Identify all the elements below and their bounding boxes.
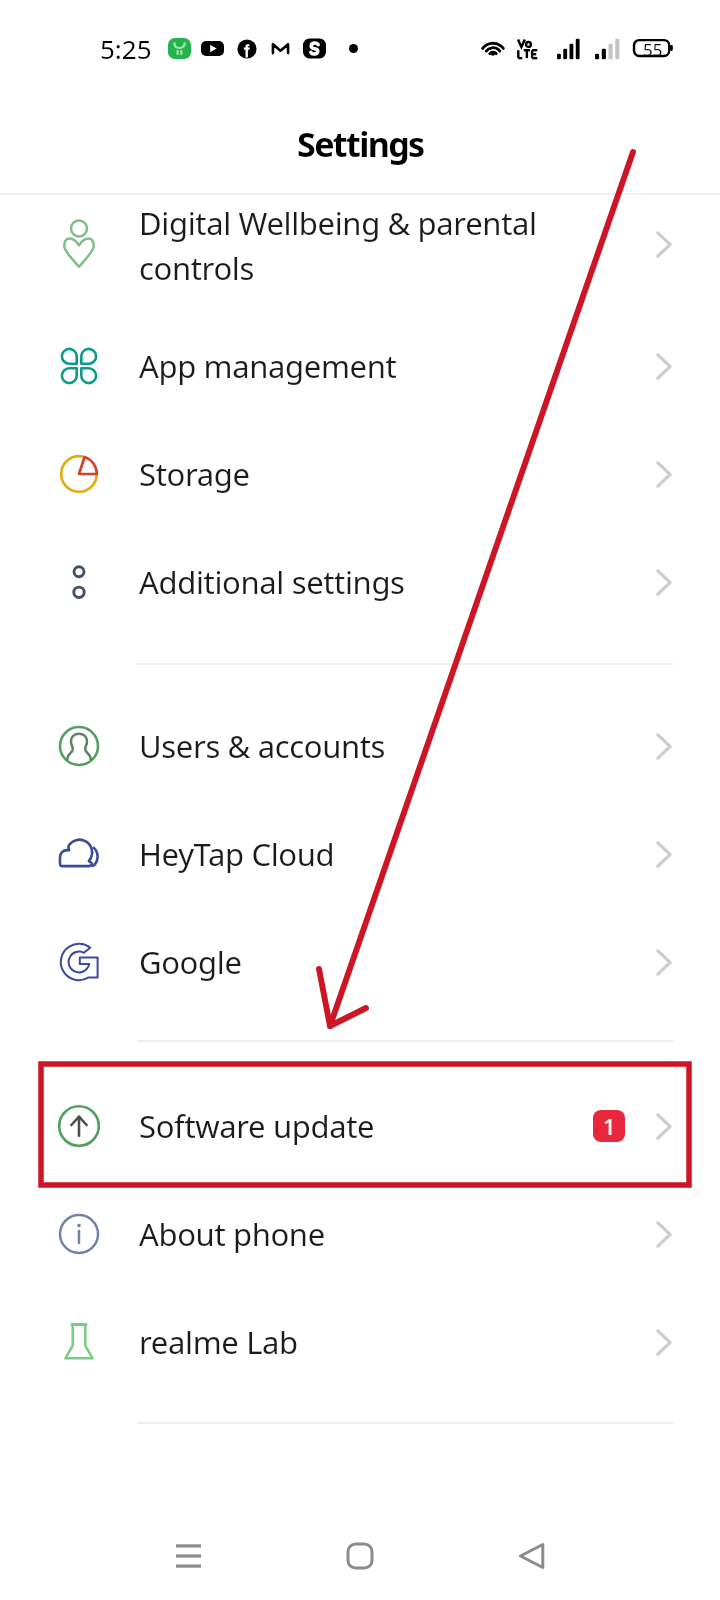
button[interactable]: Users & accounts — [0, 692, 720, 800]
button[interactable]: Recent apps — [133, 1501, 243, 1600]
button[interactable]: Digital Wellbeing & parental controls — [0, 190, 720, 298]
staticText: realme Lab — [139, 1321, 298, 1363]
staticText: About phone — [139, 1213, 325, 1255]
button[interactable]: realme Lab — [0, 1288, 720, 1396]
button[interactable]: About phone — [0, 1180, 720, 1288]
staticText: HeyTap Cloud — [139, 833, 335, 875]
button[interactable]: Additional settings — [0, 528, 720, 636]
staticText: 55 — [643, 38, 663, 61]
staticText: App management — [139, 345, 397, 387]
button[interactable]: App management — [0, 312, 720, 420]
staticText: Users & accounts — [139, 725, 386, 767]
button[interactable]: Back — [477, 1501, 587, 1600]
staticText: 5:25 — [100, 31, 152, 66]
staticText: Settings — [297, 121, 424, 167]
button[interactable]: Google — [0, 908, 720, 1016]
staticText: Digital Wellbeing & parental controls — [139, 202, 537, 289]
staticText: Software update — [139, 1105, 375, 1147]
staticText: Storage — [139, 453, 250, 495]
button[interactable]: Home — [305, 1501, 415, 1600]
button[interactable]: HeyTap Cloud — [0, 800, 720, 908]
button[interactable]: Storage — [0, 420, 720, 528]
staticText: Additional settings — [139, 561, 405, 603]
staticText: Google — [139, 941, 242, 983]
staticText: 1 — [603, 1111, 616, 1141]
button[interactable]: Software update — [0, 1072, 720, 1180]
